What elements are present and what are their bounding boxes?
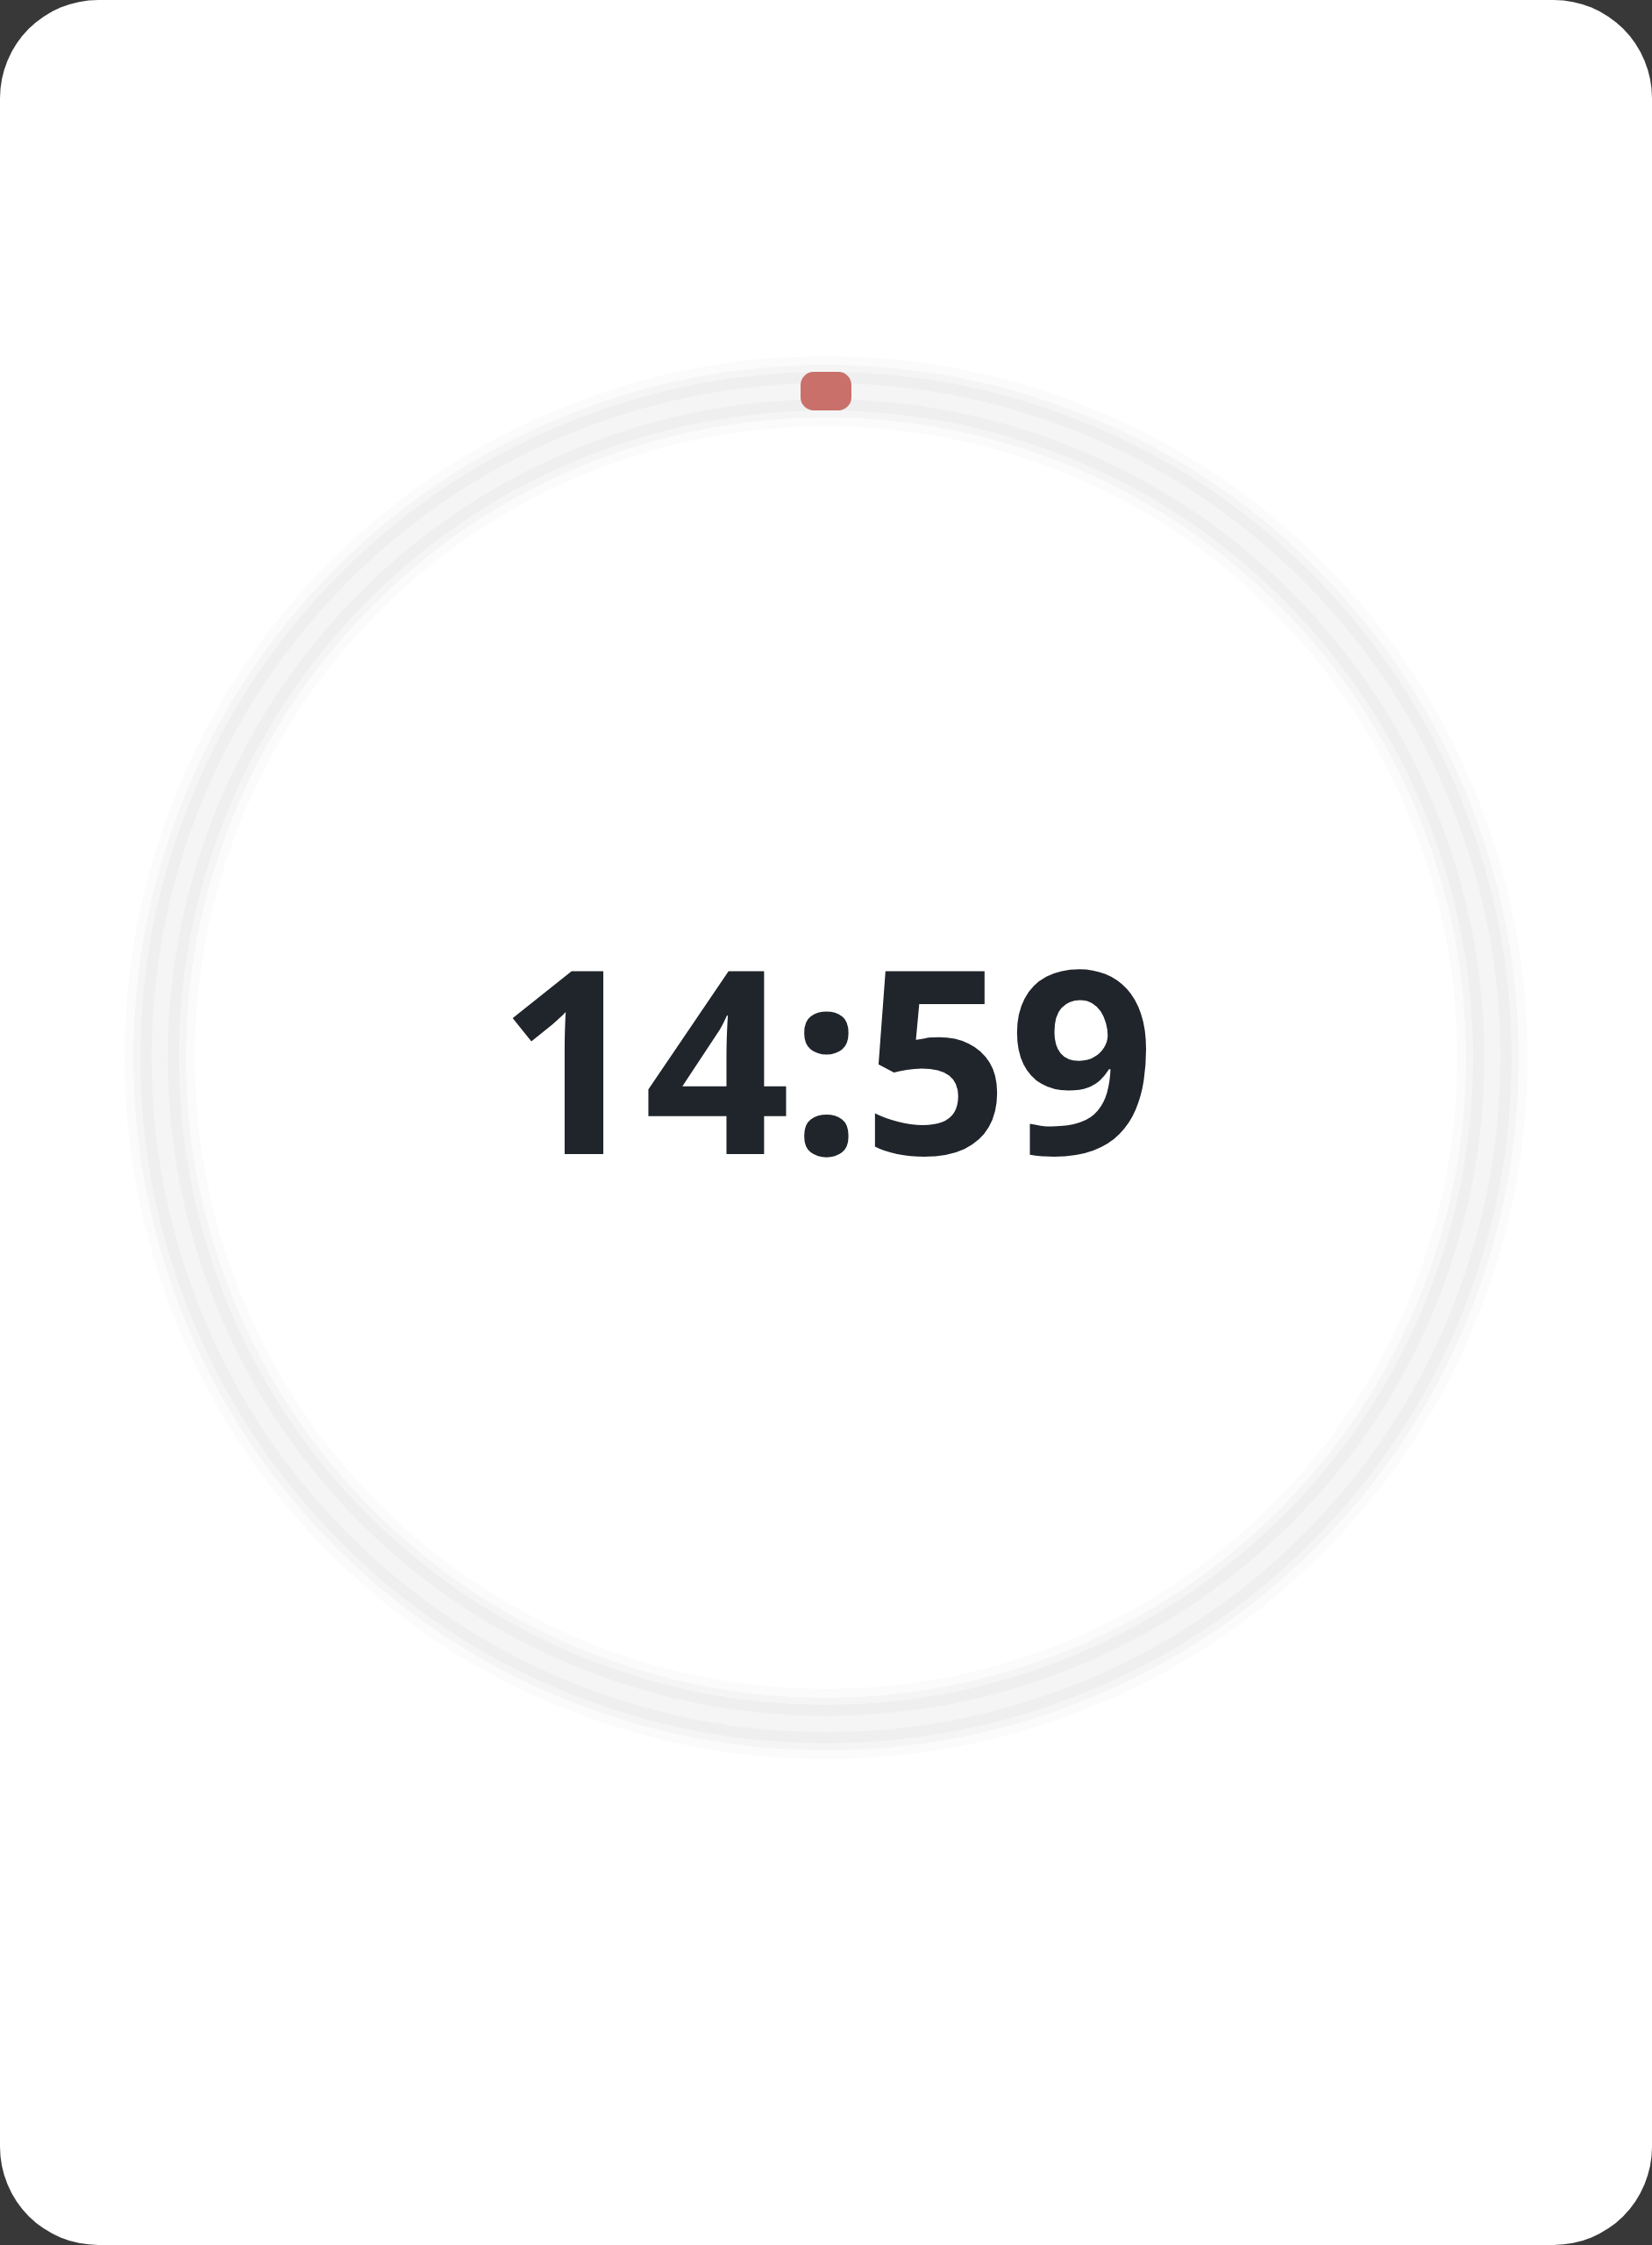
button[interactable]: Timer dial, 14:59 [0, 0, 1652, 2245]
staticText: 14:59 [497, 880, 1156, 1229]
